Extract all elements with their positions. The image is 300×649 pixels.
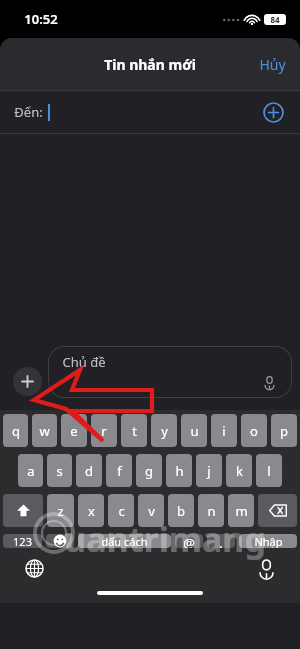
- staticText: d: [85, 462, 93, 480]
- button[interactable]: Hủy: [245, 45, 300, 84]
- staticText: 123: [13, 534, 32, 548]
- staticText: h: [175, 462, 184, 480]
- button[interactable]: Add attachment: [13, 367, 42, 396]
- staticText: z: [57, 502, 64, 520]
- staticText: e: [70, 422, 78, 440]
- button[interactable]: dấu cách: [78, 534, 171, 548]
- button[interactable]: d: [76, 454, 102, 487]
- staticText: .: [219, 534, 223, 548]
- button[interactable]: a: [18, 454, 43, 487]
- button[interactable]: x: [78, 494, 104, 527]
- staticText: v: [148, 502, 155, 520]
- staticText: m: [235, 502, 248, 520]
- staticText: u: [190, 422, 199, 440]
- button[interactable]: Add contact: [256, 95, 290, 129]
- staticText: n: [207, 502, 216, 520]
- button[interactable]: o: [241, 414, 267, 447]
- button[interactable]: Backspace: [258, 494, 297, 527]
- staticText: x: [88, 502, 95, 520]
- staticText: 84: [270, 14, 280, 25]
- button[interactable]: Chủ đề: [48, 346, 292, 398]
- button[interactable]: Emoji: [46, 534, 74, 548]
- button[interactable]: e: [61, 414, 87, 447]
- button[interactable]: h: [166, 454, 192, 487]
- button[interactable]: g: [136, 454, 162, 487]
- staticText: o: [250, 422, 258, 440]
- staticText: t: [132, 422, 137, 440]
- staticText: Hủy: [259, 55, 286, 74]
- button[interactable]: Shift: [3, 494, 43, 527]
- staticText: g: [145, 462, 153, 480]
- button[interactable]: n: [198, 494, 224, 527]
- staticText: l: [267, 462, 271, 480]
- button[interactable]: k: [226, 454, 252, 487]
- button[interactable]: f: [106, 454, 132, 487]
- staticText: k: [236, 462, 243, 480]
- button[interactable]: s: [47, 454, 72, 487]
- button[interactable]: j: [196, 454, 222, 487]
- staticText: s: [56, 462, 63, 480]
- staticText: Tin nhắn mới: [104, 55, 196, 74]
- button[interactable]: Dictate: [258, 371, 280, 393]
- button[interactable]: @: [175, 534, 203, 548]
- staticText: dấu cách: [101, 534, 148, 548]
- button[interactable]: m: [228, 494, 254, 527]
- button[interactable]: 123: [3, 534, 42, 548]
- staticText: y: [161, 422, 168, 440]
- button[interactable]: Dictation: [251, 553, 281, 583]
- staticText: Nhập: [254, 534, 283, 548]
- button[interactable]: Nhập: [239, 534, 297, 548]
- staticText: @: [183, 534, 195, 548]
- staticText: c: [118, 502, 125, 520]
- button[interactable]: c: [108, 494, 134, 527]
- button[interactable]: w: [32, 414, 57, 447]
- button[interactable]: y: [151, 414, 177, 447]
- button[interactable]: b: [168, 494, 194, 527]
- staticText: f: [117, 462, 122, 480]
- button[interactable]: q: [3, 414, 28, 447]
- staticText: a: [27, 462, 35, 480]
- button[interactable]: u: [181, 414, 207, 447]
- button[interactable]: .: [207, 534, 235, 548]
- button[interactable]: l: [256, 454, 282, 487]
- staticText: i: [222, 422, 226, 440]
- button[interactable]: i: [211, 414, 237, 447]
- staticText: uantrimang: [64, 516, 266, 562]
- button[interactable]: t: [121, 414, 147, 447]
- button[interactable]: v: [138, 494, 164, 527]
- staticText: q: [12, 422, 20, 440]
- staticText: p: [280, 422, 288, 440]
- staticText: b: [177, 502, 185, 520]
- button[interactable]: p: [271, 414, 297, 447]
- button[interactable]: Change keyboard: [19, 553, 49, 583]
- button[interactable]: z: [47, 494, 74, 527]
- staticText: r: [101, 422, 107, 440]
- staticText: Đến:: [14, 103, 43, 121]
- staticText: Chủ đề: [62, 353, 106, 371]
- staticText: 10:52: [24, 10, 58, 28]
- staticText: j: [207, 462, 211, 480]
- button[interactable]: r: [91, 414, 117, 447]
- staticText: w: [39, 422, 50, 440]
